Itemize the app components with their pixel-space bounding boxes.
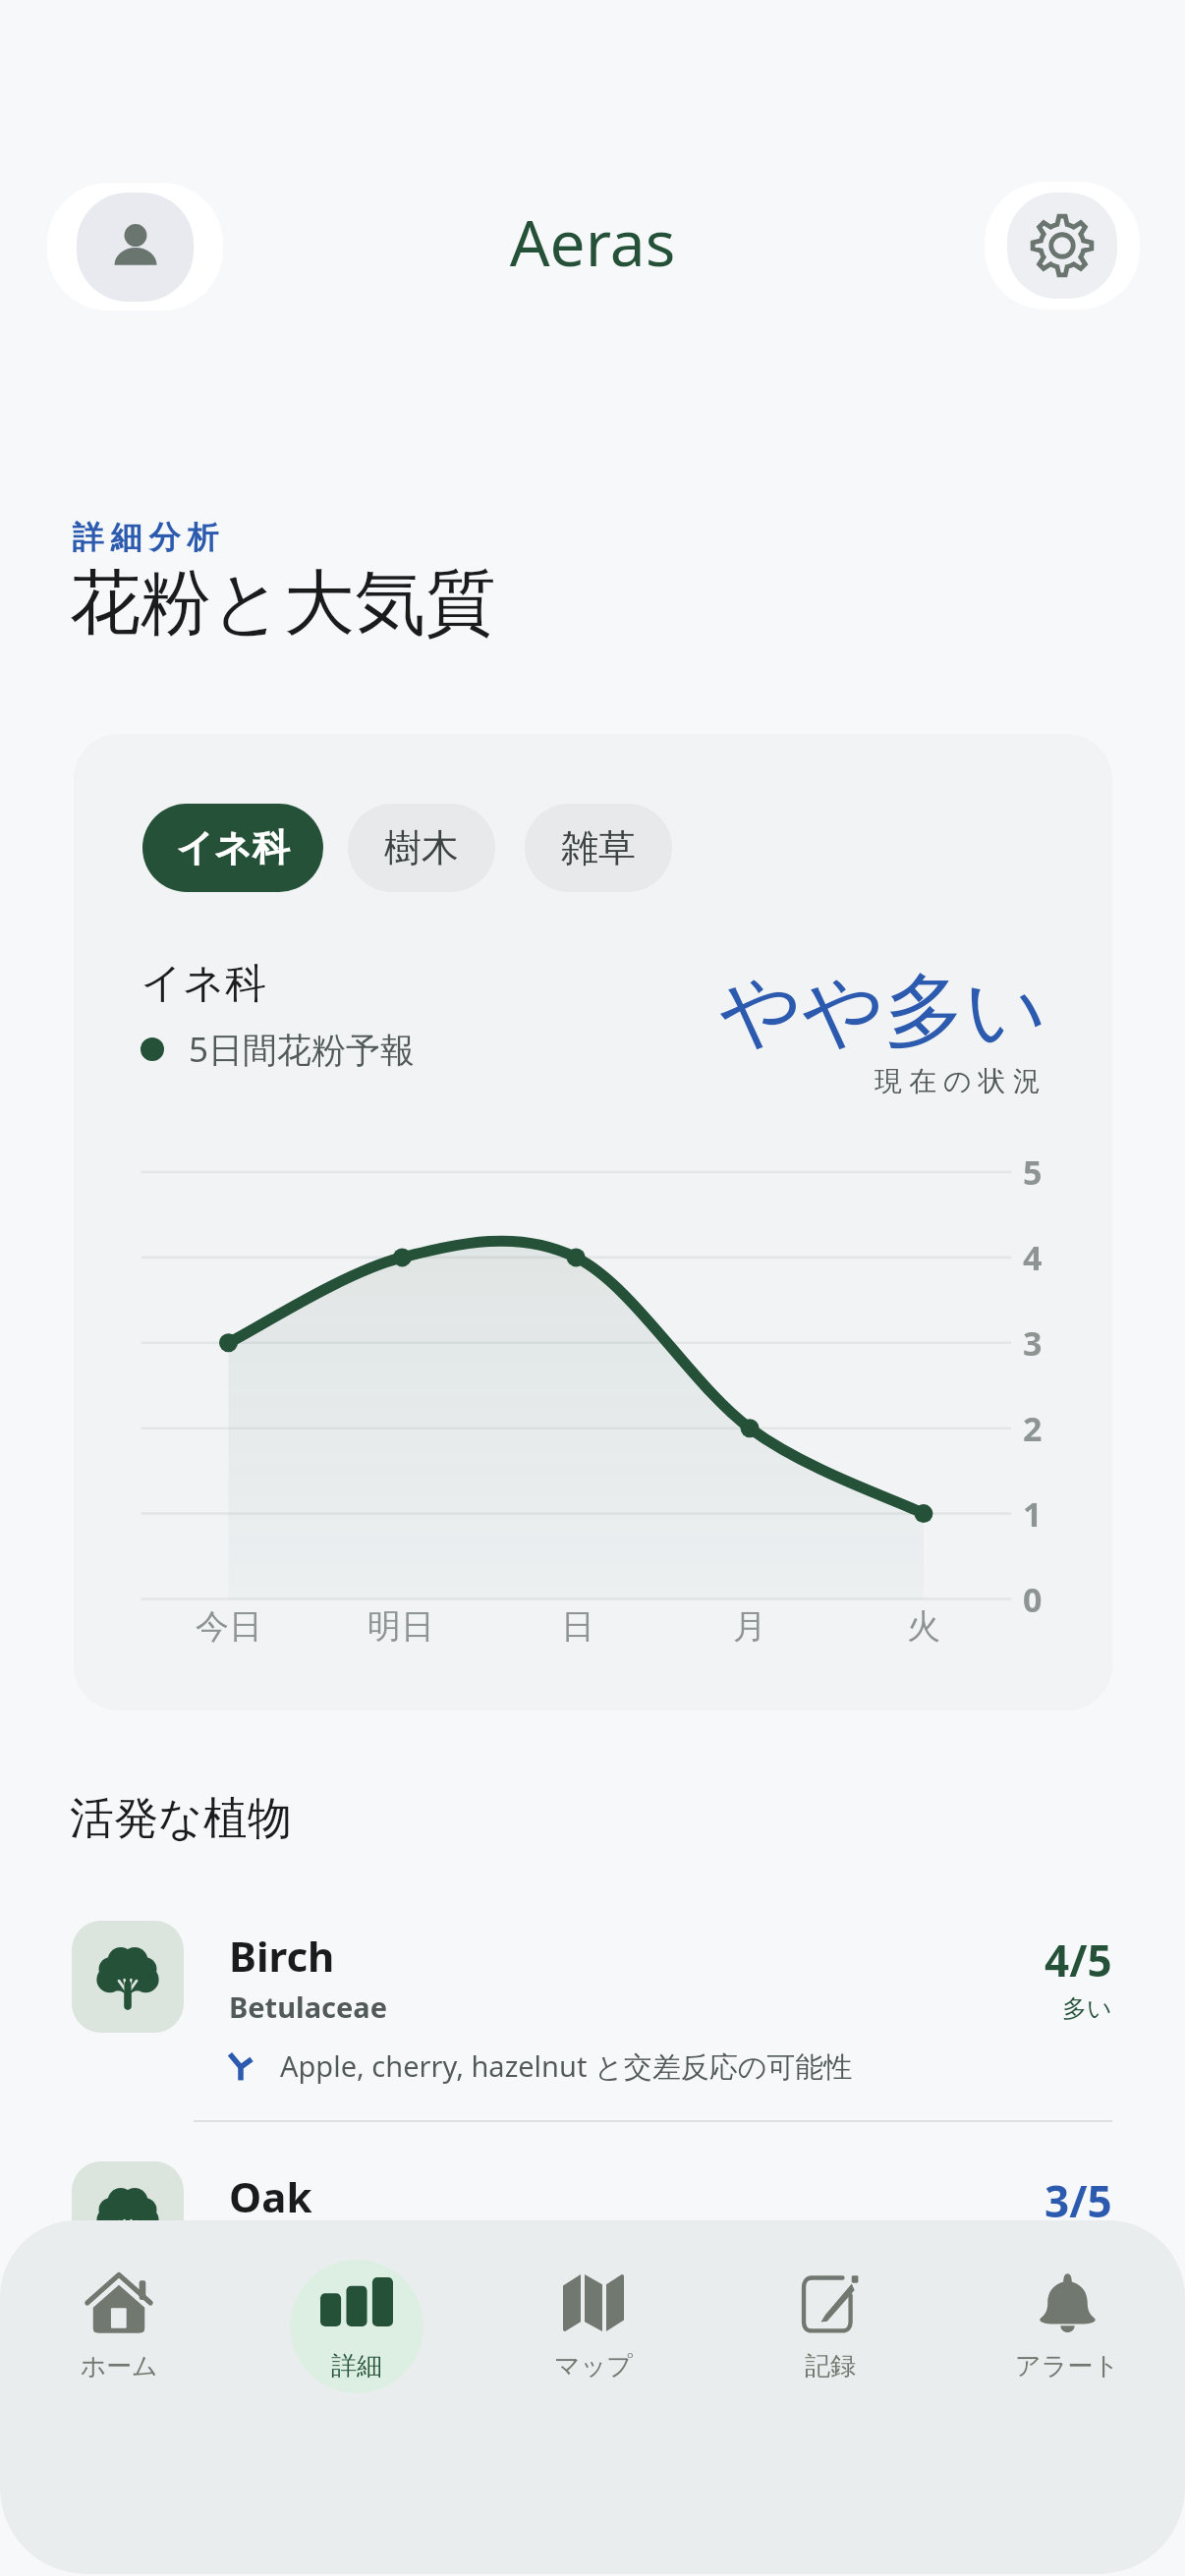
staticText: 花粉と大気質 [70,559,496,648]
staticText: 活発な植物 [70,1791,293,1847]
staticText: 記録 [805,2350,856,2382]
button[interactable]: Profile [47,183,223,310]
staticText: Betulaceae [229,1988,388,2026]
button[interactable]: 樹木 [348,804,495,892]
button[interactable]: 詳細 [238,2220,475,2574]
staticText: Birch [229,1928,335,1984]
staticText: イネ科 [141,958,266,1010]
staticText: 樹木 [384,824,459,871]
button[interactable]: マップ [475,2220,711,2574]
staticText: やや多い [719,961,1047,1062]
staticText: 4 [1023,1235,1043,1280]
staticText: 5日間花粉予報 [189,1026,416,1073]
staticText: 現在の状況 [875,1064,1047,1098]
staticText: 2 [1023,1406,1043,1451]
staticText: 4/5 [1044,1931,1112,1989]
staticText: ホーム [80,2350,158,2382]
staticText: 5 [1023,1149,1043,1195]
staticText: 明日 [367,1605,434,1648]
staticText: 0 [1023,1577,1043,1622]
staticText: 3 [1023,1320,1043,1366]
button[interactable]: Oak [0,2161,1185,2273]
staticText: Oak [229,2168,312,2224]
button[interactable]: ホーム [0,2220,238,2574]
staticText: Aeras [0,199,1185,285]
button[interactable]: Birch [0,1921,1185,2161]
button[interactable]: 記録 [711,2220,948,2574]
staticText: イネ科 [176,824,290,871]
staticText: 火 [907,1605,940,1648]
button[interactable]: 雑草 [525,804,672,892]
staticText: アラート [1015,2350,1119,2382]
staticText: マップ [554,2350,633,2382]
button[interactable]: アラート [948,2220,1185,2574]
staticText: 多い [1062,1993,1112,2024]
staticText: 3/5 [1044,2171,1112,2230]
staticText: 月 [733,1605,766,1648]
staticText: 日 [561,1605,594,1648]
button[interactable]: Settings [985,182,1140,309]
staticText: 今日 [196,1605,262,1648]
staticText: 1 [1023,1491,1043,1537]
staticText: 詳細分析 [69,518,222,557]
staticText: Apple, cherry, hazelnut と交差反応の可能性 [280,2046,853,2086]
button[interactable]: イネ科 [142,804,323,892]
staticText: 詳細 [331,2350,382,2382]
staticText: 雑草 [561,824,636,871]
